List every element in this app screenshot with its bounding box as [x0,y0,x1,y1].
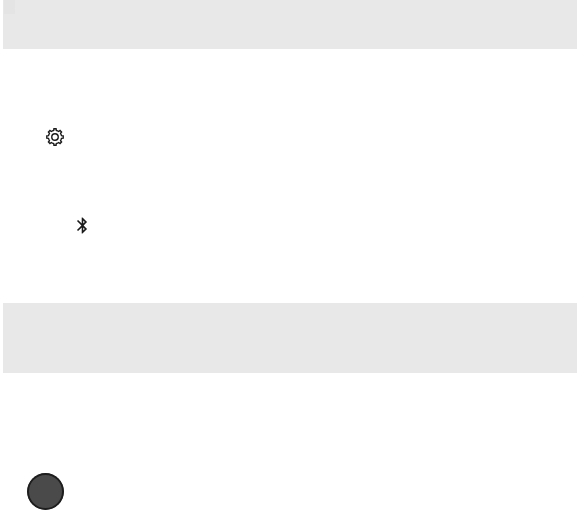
button[interactable]: Settings [35,117,75,157]
button[interactable]: Add [27,473,64,510]
button[interactable]: Bluetooth [62,205,102,245]
